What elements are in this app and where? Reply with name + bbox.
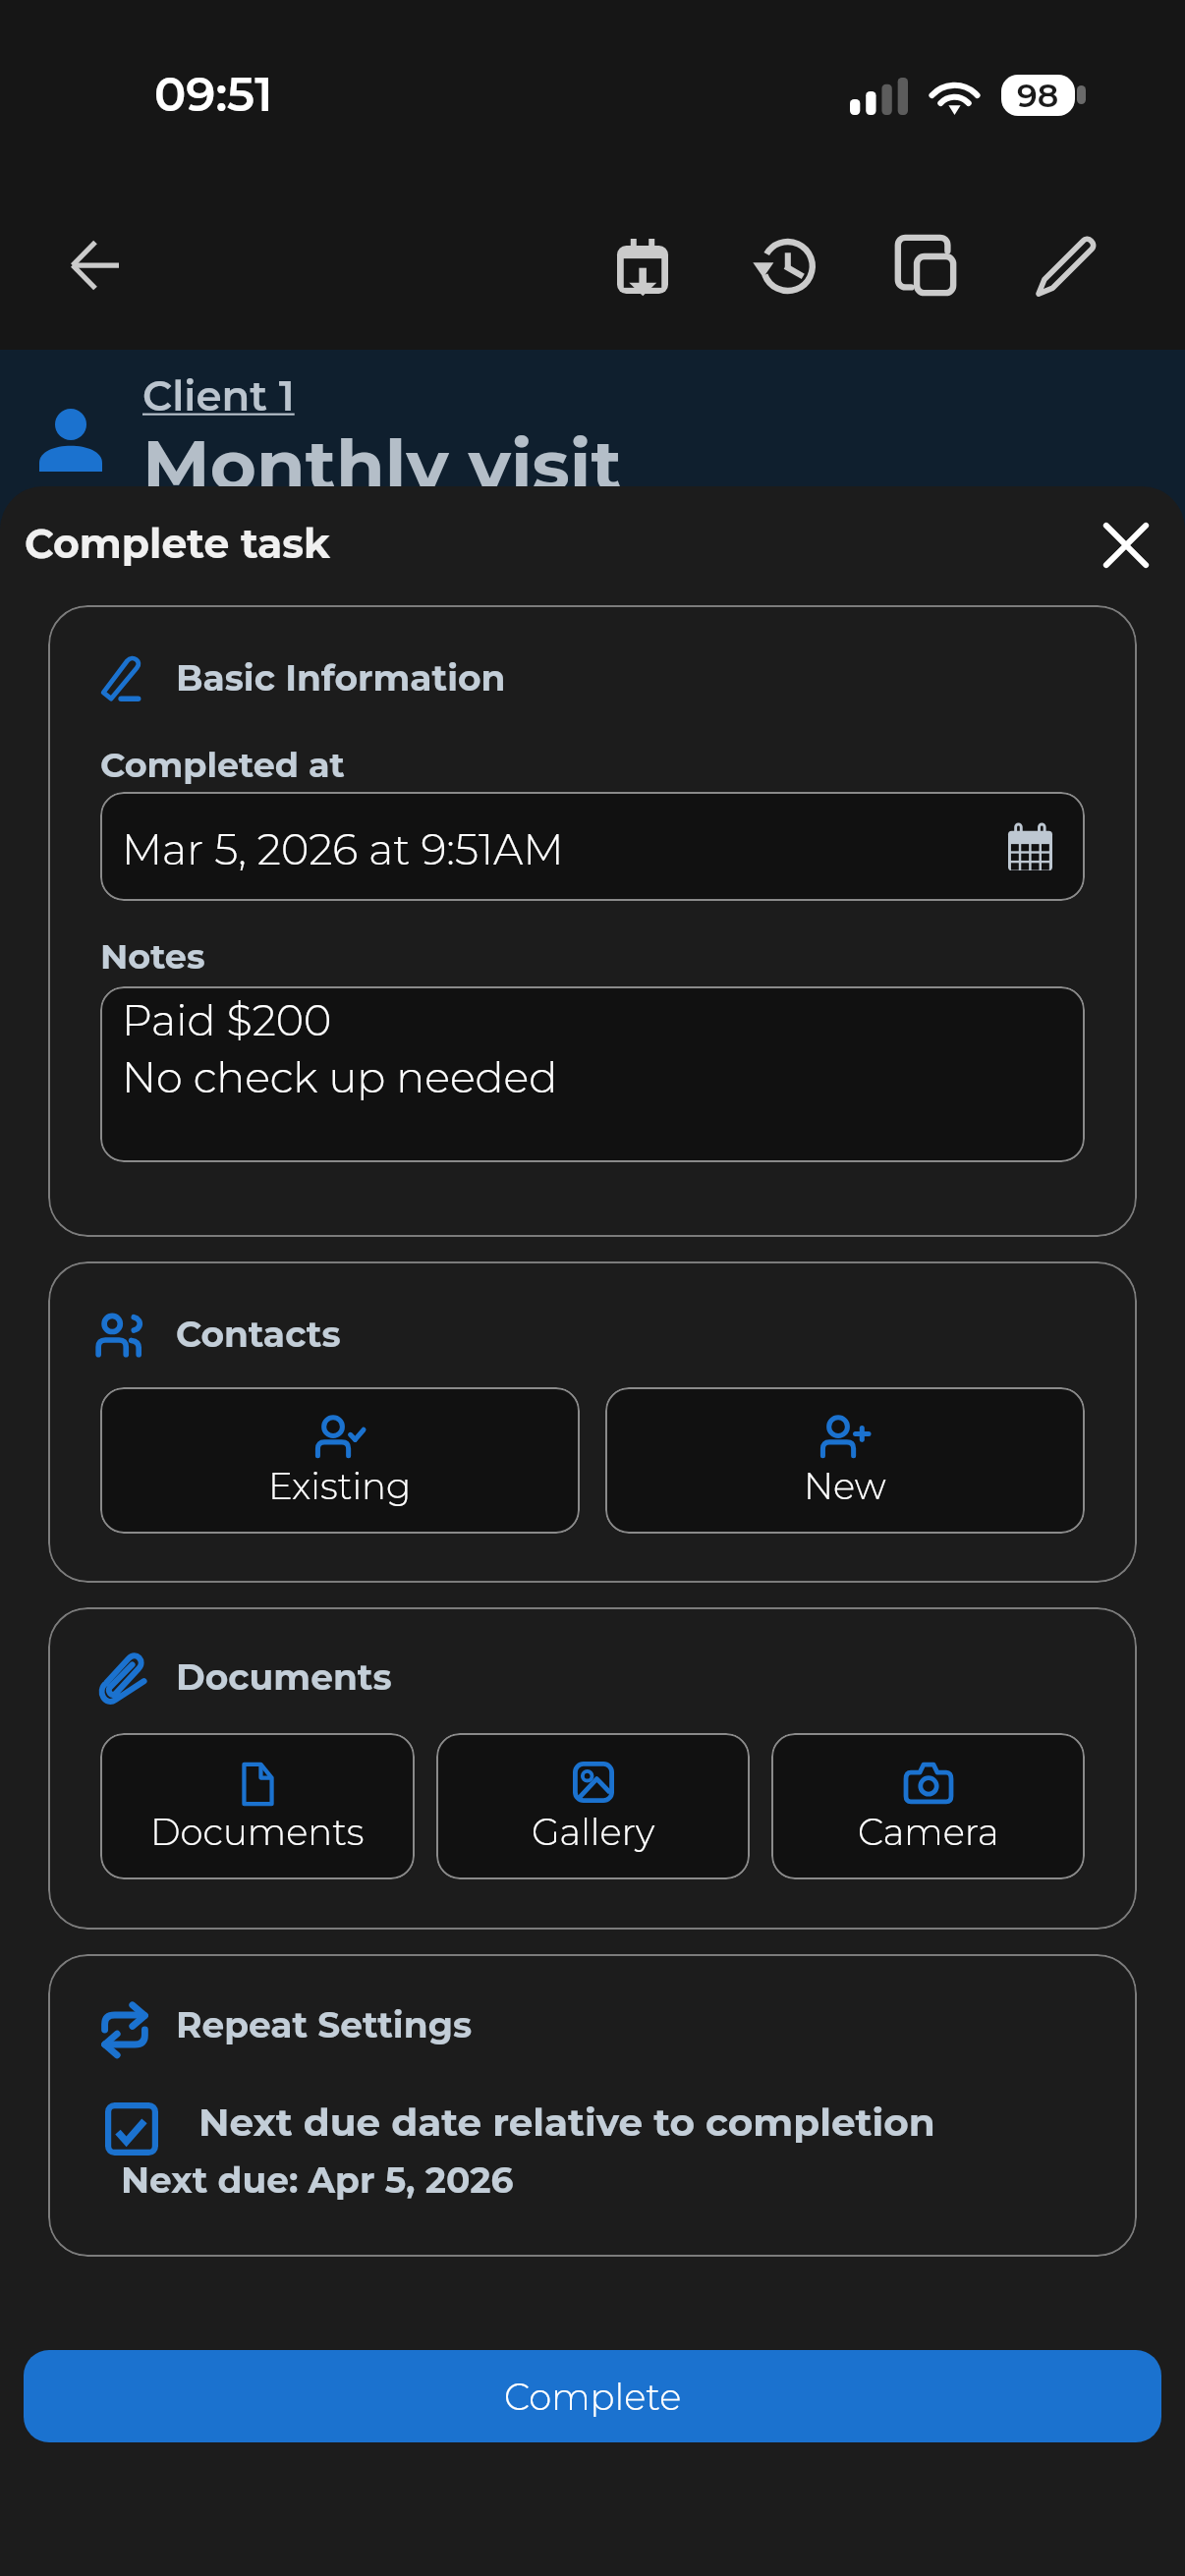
button[interactable]: Duplicate [878,218,973,312]
button[interactable]: New [605,1387,1085,1534]
staticText: Contacts [176,1313,341,1356]
staticText: Gallery [532,1810,655,1854]
staticText: 09:51 [154,66,273,124]
staticText: Documents [150,1810,365,1854]
staticText: Next due date relative to completion [198,2099,935,2146]
button[interactable]: Documents [100,1733,415,1879]
button[interactable]: Add to calendar [595,219,690,313]
staticText: 98 [1017,76,1059,115]
staticText: Paid $200 [122,994,332,1045]
staticText: Repeat Settings [176,2003,473,2046]
button[interactable]: Edit [1020,218,1114,312]
staticText: Documents [176,1655,392,1699]
staticText: No check up needed [122,1051,558,1102]
button[interactable]: Camera [771,1733,1085,1879]
button[interactable]: Paid $200 [100,986,1085,1162]
staticText: Completed at [100,744,345,786]
staticText: Existing [268,1464,412,1508]
staticText: Monthly visit [142,421,622,508]
staticText: Complete [504,2375,682,2419]
button[interactable]: History [736,219,830,313]
button[interactable]: Back [47,218,141,312]
staticText: Camera [858,1810,999,1854]
button[interactable]: Mar 5, 2026 at 9:51AM [100,792,1085,901]
staticText: Notes [100,935,205,978]
staticText: Mar 5, 2026 at 9:51AM [122,823,564,874]
button[interactable]: Close [1071,490,1181,600]
button[interactable]: Existing [100,1387,580,1534]
staticText: Next due: Apr 5, 2026 [121,2158,514,2202]
staticText: Complete task [25,519,330,568]
button[interactable]: Gallery [436,1733,750,1879]
button[interactable]: Next due date relative to completion [48,2096,1137,2160]
button[interactable]: Complete [24,2350,1161,2442]
staticText: Basic Information [176,656,506,700]
staticText: New [804,1464,886,1508]
staticText: Client 1 [142,370,295,420]
